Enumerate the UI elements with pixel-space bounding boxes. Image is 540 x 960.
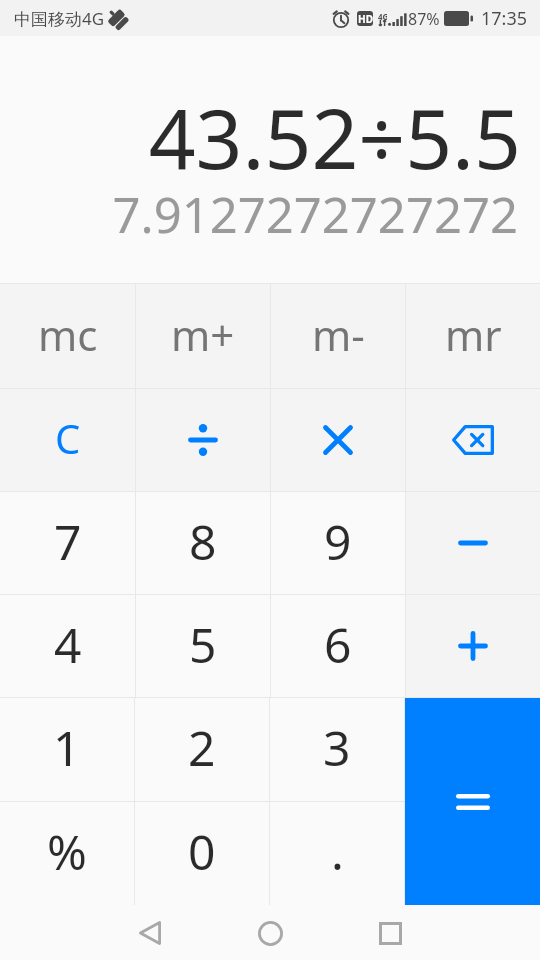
button[interactable]: Equals [405,698,540,905]
button[interactable]: m- [271,284,405,388]
staticText: 43.52÷5.5 [148,81,521,193]
button[interactable]: 9 [271,492,405,594]
button[interactable]: 1 [0,698,134,801]
button[interactable]: Home [246,909,294,957]
button[interactable]: 6 [271,595,405,697]
staticText: 9 [324,509,352,574]
staticText: 2 [188,715,216,780]
staticText: 中国移动4G [14,7,105,30]
staticText: 7.9127272727272 [112,181,518,248]
button[interactable]: Plus [406,595,540,697]
button[interactable]: 4 [0,595,135,697]
staticText: 17:35 [481,6,528,31]
staticText: m+ [171,306,235,363]
button[interactable]: 8 [136,492,270,594]
staticText: 1 [53,715,81,780]
button[interactable]: mc [0,284,135,388]
staticText: HD [358,12,373,26]
button[interactable]: mr [406,284,540,388]
staticText: 4G [378,11,387,22]
button[interactable]: Minus [406,492,540,594]
staticText: 8 [189,509,217,574]
button[interactable]: Multiply [271,389,405,491]
staticText: 3 [323,715,351,780]
button[interactable]: m+ [136,284,270,388]
staticText: mc [38,306,98,363]
staticText: % [47,819,87,884]
button[interactable]: 7 [0,492,135,594]
staticText: 0 [188,819,216,884]
button[interactable]: C [0,389,135,491]
button[interactable]: Back [126,909,174,957]
button[interactable]: 3 [270,698,404,801]
button[interactable]: % [0,802,134,905]
button[interactable]: . [270,802,404,905]
staticText: mr [445,306,502,363]
staticText: 7 [54,509,82,574]
button[interactable]: 2 [135,698,269,801]
staticText: 4 [54,612,82,677]
button[interactable]: Backspace [406,389,540,491]
staticText: 87% [408,8,440,30]
button[interactable]: Recents [366,909,414,957]
staticText: 5 [189,612,217,677]
staticText: 6 [324,612,352,677]
button[interactable]: 0 [135,802,269,905]
button[interactable]: 5 [136,595,270,697]
button[interactable]: Divide [136,389,270,491]
staticText: . [331,819,344,884]
staticText: m- [312,306,365,363]
staticText: C [55,411,81,465]
